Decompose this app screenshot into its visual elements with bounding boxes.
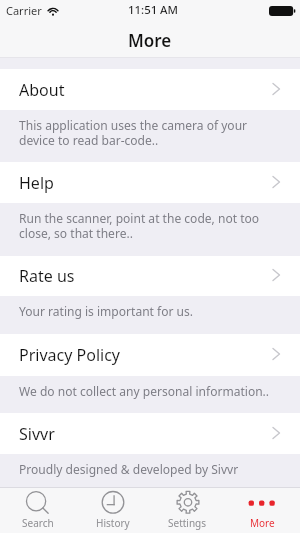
staticText: This application uses the camera of your… [19,117,248,148]
button[interactable]: History [75,488,150,533]
button[interactable]: Privacy Policy [0,334,300,376]
staticText: Privacy Policy [19,344,120,366]
button[interactable]: Help [0,162,300,203]
staticText: About [19,79,65,101]
staticText: More [128,29,172,52]
staticText: History [96,516,130,530]
button[interactable]: Rate us [0,256,300,296]
button[interactable]: Settings [150,488,225,533]
staticText: Search [22,516,54,530]
other: Wi-Fi signal [47,6,59,15]
staticText: Proudly designed & developed by Sivvr [19,461,239,477]
staticText: Run the scanner, point at the code, not … [19,210,260,241]
staticText: We do not collect any personal informati… [19,383,270,399]
staticText: Your rating is important for us. [19,303,194,319]
staticText: Sivvr [19,423,55,445]
button[interactable]: Sivvr [0,413,300,454]
staticText: Rate us [19,265,75,287]
staticText: More [250,516,275,530]
staticText: 11:51 AM [128,2,179,18]
button[interactable]: About [0,69,300,110]
staticText: Carrier [6,3,42,18]
button[interactable]: More [225,488,300,533]
other: Battery full [269,6,295,16]
button[interactable]: Search [0,488,75,533]
staticText: Help [19,172,54,194]
staticText: Settings [168,516,207,530]
